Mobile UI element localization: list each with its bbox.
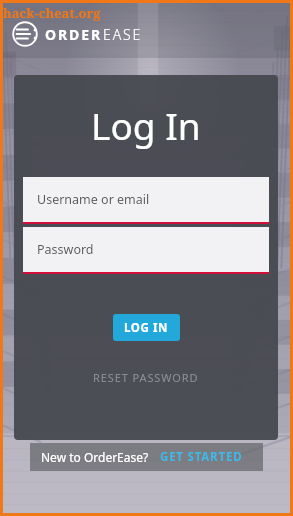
staticText: LOG IN <box>124 320 169 336</box>
button[interactable]: LOG IN <box>113 314 180 341</box>
staticText: ORDER <box>45 25 103 44</box>
button[interactable]: Password <box>23 227 269 274</box>
button[interactable]: Username or email <box>23 177 269 224</box>
staticText: EASE <box>103 25 143 44</box>
button[interactable]: RESET PASSWORD <box>87 367 205 388</box>
button[interactable]: OrderEase logo <box>12 20 143 48</box>
staticText: New to OrderEase? <box>41 449 149 465</box>
button[interactable]: GET STARTED <box>158 445 245 469</box>
staticText: RESET PASSWORD <box>93 370 199 385</box>
staticText: hack-cheat.org <box>3 4 101 22</box>
staticText: GET STARTED <box>160 449 243 465</box>
staticText: Password <box>37 241 94 258</box>
staticText: Username or email <box>37 191 150 208</box>
staticText: Log In <box>91 100 201 150</box>
